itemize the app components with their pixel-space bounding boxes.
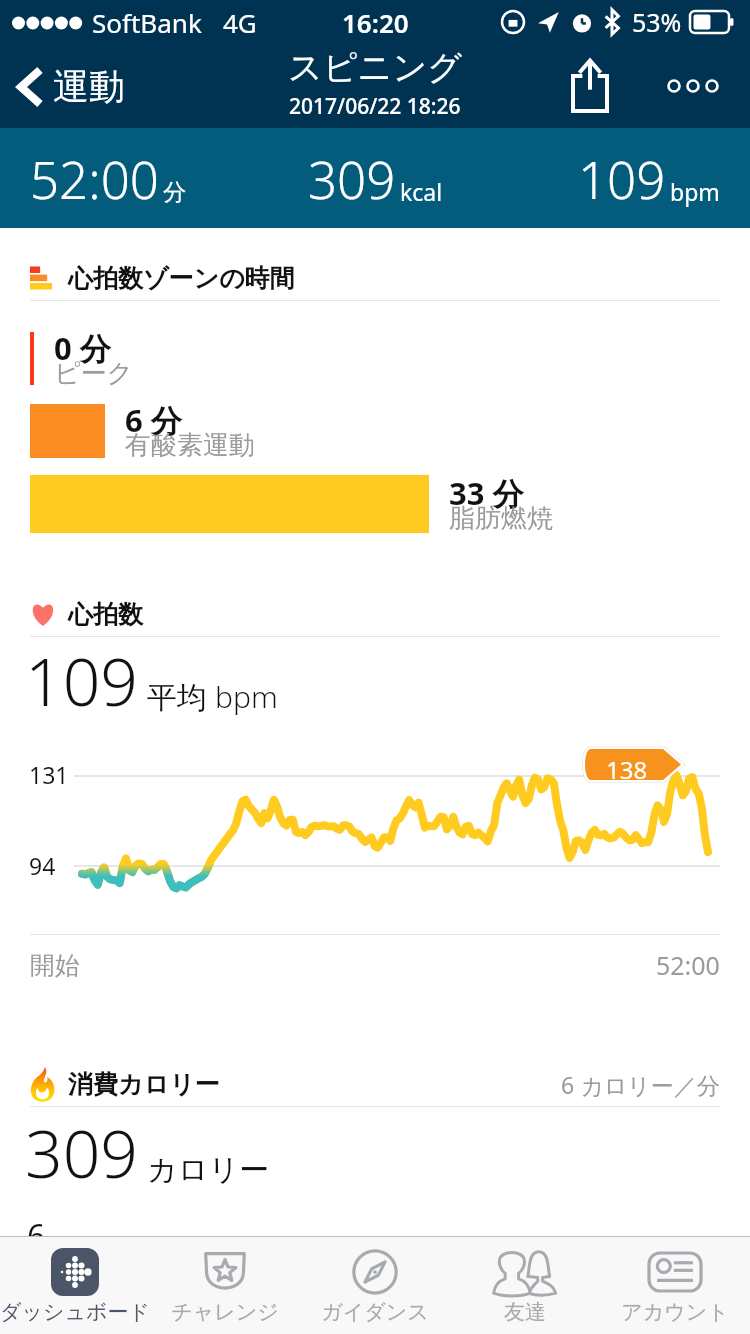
staticText: 分 <box>163 178 186 207</box>
staticText: カロリー <box>147 1151 270 1189</box>
staticText: SoftBank <box>92 5 202 40</box>
staticText: 53% <box>632 5 682 39</box>
staticText: bpm <box>215 676 278 717</box>
staticText: 平均 <box>147 679 207 717</box>
staticText: 心拍数ゾーンの時間 <box>68 263 295 294</box>
button[interactable]: チャレンジ <box>150 1237 300 1334</box>
staticText: 109 <box>25 635 139 725</box>
staticText: 52:00 <box>30 144 159 213</box>
staticText: チャレンジ <box>171 1299 279 1325</box>
staticText: 0 分 <box>54 327 111 369</box>
staticText: アカウント <box>621 1299 729 1325</box>
staticText: 94 <box>29 850 56 881</box>
button[interactable]: ダッシュボード <box>0 1237 150 1334</box>
staticText: 開始 <box>30 950 80 981</box>
staticText: 6 分 <box>125 399 182 441</box>
button[interactable]: 友達 <box>450 1237 600 1334</box>
staticText: スピニング <box>288 46 462 89</box>
staticText: 4G <box>223 5 257 40</box>
staticText: 309 <box>308 144 396 213</box>
staticText: 109 <box>578 144 666 213</box>
staticText: 有酸素運動 <box>125 429 255 462</box>
button[interactable]: 運動 <box>0 56 143 117</box>
staticText: 131 <box>29 759 69 790</box>
staticText: 33 分 <box>449 472 524 514</box>
staticText: 309 <box>25 1107 139 1197</box>
button[interactable]: ガイダンス <box>300 1237 450 1334</box>
button[interactable]: Share <box>552 48 628 124</box>
staticText: 6 <box>27 1214 46 1258</box>
button[interactable]: アカウント <box>600 1237 750 1334</box>
staticText: 心拍数 <box>68 599 143 630</box>
staticText: 6 カロリー／分 <box>561 1069 720 1100</box>
staticText: 運動 <box>53 64 125 109</box>
staticText: 52:00 <box>656 948 720 982</box>
staticText: 2017/06/22 18:26 <box>289 92 461 121</box>
staticText: 138 <box>606 753 648 786</box>
staticText: ガイダンス <box>321 1299 429 1325</box>
staticText: 16:20 <box>342 5 409 40</box>
staticText: 脂肪燃焼 <box>449 502 553 535</box>
staticText: 友達 <box>504 1299 546 1325</box>
staticText: kcal <box>400 176 443 207</box>
button[interactable]: More options <box>651 45 733 127</box>
staticText: bpm <box>670 176 720 207</box>
staticText: ダッシュボード <box>0 1299 150 1325</box>
staticText: 消費カロリー <box>68 1069 220 1100</box>
staticText: ピーク <box>54 357 134 390</box>
